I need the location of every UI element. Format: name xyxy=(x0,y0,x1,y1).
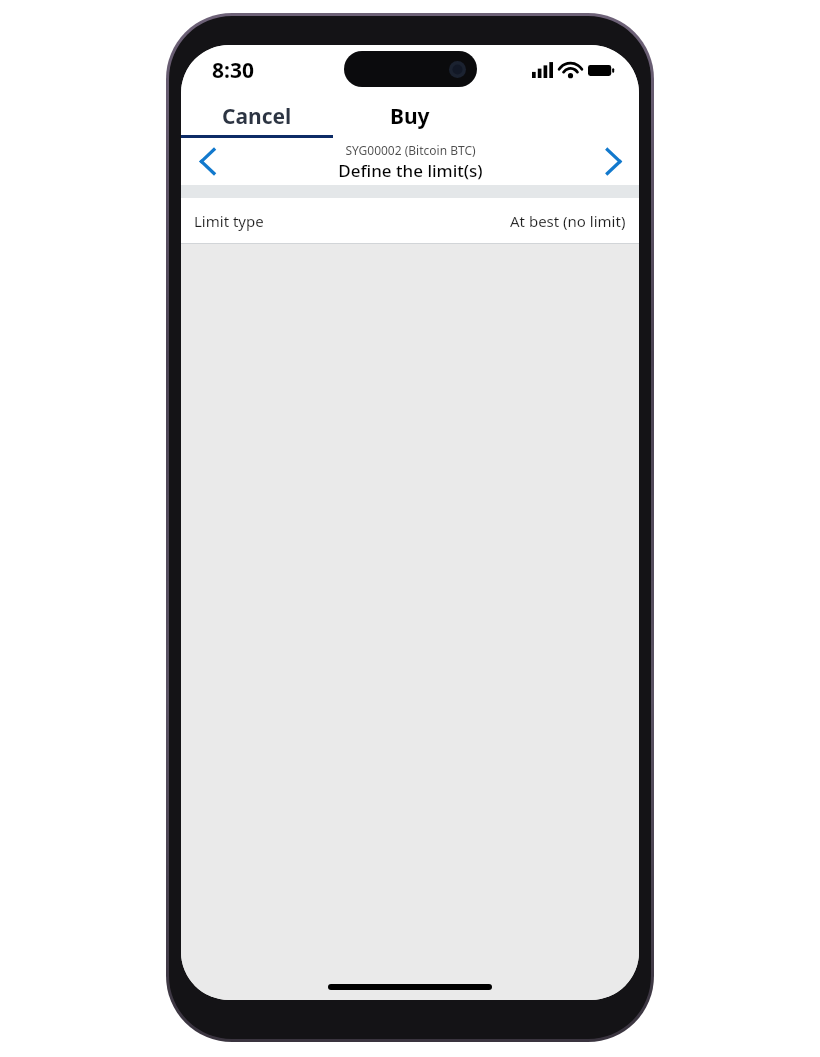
button[interactable]: Buy xyxy=(333,95,486,138)
staticText: 8:30 xyxy=(212,56,254,85)
button[interactable]: Previous step xyxy=(181,138,233,185)
button[interactable]: Cancel xyxy=(181,95,333,138)
staticText: At best (no limit) xyxy=(510,211,626,231)
staticText: Limit type xyxy=(194,211,264,231)
button[interactable]: Next step xyxy=(587,138,639,185)
button[interactable]: Limit type xyxy=(181,198,639,244)
staticText: Cancel xyxy=(222,102,292,131)
staticText: Define the limit(s) xyxy=(338,159,483,182)
staticText: SYG00002 (Bitcoin BTC) xyxy=(345,142,476,158)
staticText: Buy xyxy=(390,102,430,131)
